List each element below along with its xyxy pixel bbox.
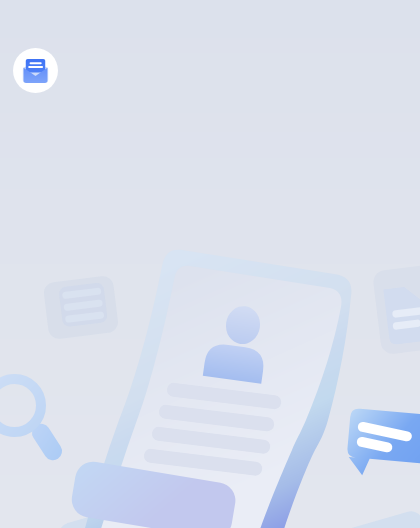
button[interactable]: Mail (13, 48, 58, 93)
